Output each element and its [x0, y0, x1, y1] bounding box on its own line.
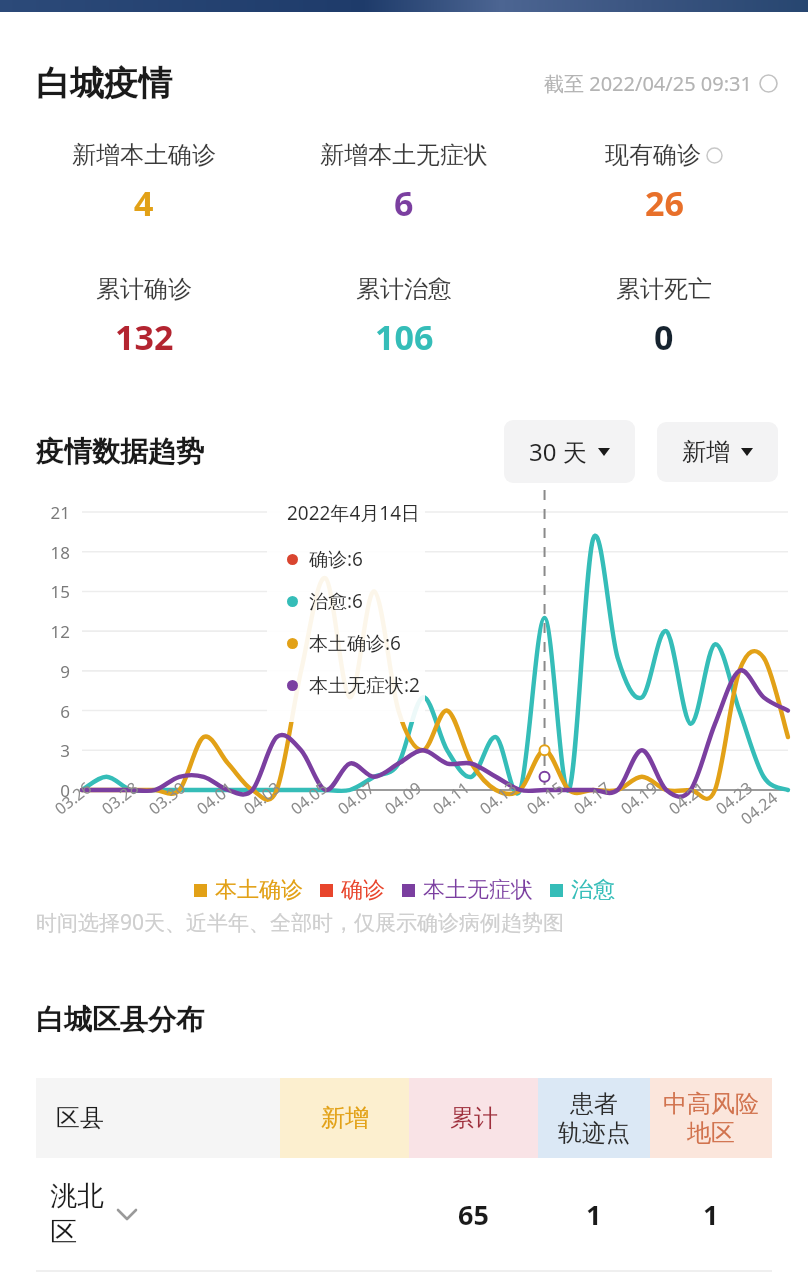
button[interactable]: 截至 2022/04/25 09:31 [544, 70, 778, 97]
staticText: 03.30 [144, 777, 190, 819]
button[interactable]: 新增 [280, 1078, 409, 1158]
button[interactable]: 累计确诊 [14, 274, 274, 360]
staticText: 患者 轨迹点 [558, 1089, 630, 1148]
staticText: 新增本土确诊 [72, 140, 216, 170]
staticText: 本土确诊:6 [309, 630, 401, 656]
staticText: 现有确诊 [605, 140, 701, 170]
staticText: 26 [645, 180, 684, 226]
staticText: 本土无症状:2 [309, 672, 420, 698]
staticText: 9 [24, 660, 70, 683]
staticText: 132 [115, 314, 174, 360]
staticText: 治愈 [571, 876, 615, 904]
staticText: 白城疫情 [36, 62, 172, 105]
staticText: 中高风险 地区 [663, 1089, 759, 1148]
staticText: 确诊 [341, 876, 385, 904]
staticText: 04.05 [286, 777, 332, 819]
staticText: 03.28 [97, 777, 143, 819]
staticText: 6 [24, 700, 70, 723]
staticText: 03.26 [50, 777, 96, 819]
button[interactable]: 30 天 [504, 420, 635, 483]
button[interactable]: 区县 [36, 1078, 280, 1158]
staticText: 21 [24, 501, 70, 524]
staticText: 0 [24, 779, 70, 802]
staticText: 截至 2022/04/25 09:31 [544, 70, 752, 97]
button[interactable]: 患者 轨迹点 [538, 1078, 650, 1158]
staticText: 04.03 [239, 777, 285, 819]
button[interactable]: 本土无症状 [402, 876, 533, 904]
staticText: 04.13 [475, 777, 521, 819]
staticText: 新增本土无症状 [320, 140, 488, 170]
staticText: 30 天 [529, 435, 587, 468]
button[interactable]: 治愈 [550, 876, 615, 904]
button[interactable]: 新增本土确诊 [14, 140, 274, 226]
staticText: 6 [394, 180, 414, 226]
other: 展开 [116, 1208, 138, 1221]
button[interactable]: 中高风险 地区 [650, 1078, 772, 1158]
staticText: 18 [24, 541, 70, 564]
staticText: 04.07 [333, 777, 379, 819]
staticText: 新增 [321, 1103, 369, 1133]
staticText: 1 [586, 1196, 602, 1233]
button[interactable]: 确诊 [320, 876, 385, 904]
staticText: 04.19 [616, 777, 662, 819]
staticText: 4 [134, 180, 154, 226]
staticText: 04.09 [380, 777, 426, 819]
staticText: 15 [24, 580, 70, 603]
staticText: 04.23 [711, 777, 757, 819]
staticText: 洮北 区 [50, 1179, 104, 1249]
other: 数据说明 [759, 74, 778, 93]
staticText: 04.21 [664, 777, 710, 819]
staticText: 累计 [450, 1103, 498, 1133]
staticText: 12 [24, 620, 70, 643]
button[interactable]: 累计治愈 [274, 274, 534, 360]
staticText: 白城区县分布 [36, 1002, 204, 1037]
staticText: 0 [654, 314, 674, 360]
button[interactable]: 新增本土无症状 [274, 140, 534, 226]
staticText: 1 [703, 1196, 719, 1233]
staticText: 106 [375, 314, 434, 360]
button[interactable]: 本土确诊 [194, 876, 303, 904]
staticText: 时间选择90天、近半年、全部时，仅展示确诊病例趋势图 [36, 908, 565, 937]
button[interactable]: 累计死亡 [534, 274, 794, 360]
staticText: 04.15 [522, 777, 568, 819]
button[interactable]: 新增 [657, 422, 778, 482]
staticText: 新增 [682, 437, 730, 467]
button[interactable]: 累计 [409, 1078, 538, 1158]
staticText: 04.17 [569, 777, 615, 819]
staticText: 累计治愈 [356, 274, 452, 304]
staticText: 65 [458, 1196, 489, 1233]
staticText: 治愈:6 [309, 588, 363, 614]
staticText: 本土无症状 [423, 876, 533, 904]
staticText: 3 [24, 739, 70, 762]
staticText: 本土确诊 [215, 876, 303, 904]
staticText: 04.11 [428, 777, 474, 819]
staticText: 区县 [56, 1103, 104, 1133]
button[interactable]: 洮北 区 [36, 1158, 772, 1270]
staticText: 04.01 [192, 777, 238, 819]
staticText: 累计确诊 [96, 274, 192, 304]
staticText: 2022年4月14日 [287, 500, 421, 526]
button[interactable]: 现有确诊 [534, 140, 794, 226]
staticText: 疫情数据趋势 [36, 434, 204, 469]
staticText: 04.24 [736, 787, 782, 829]
staticText: 确诊:6 [309, 546, 363, 572]
staticText: 累计死亡 [616, 274, 712, 304]
